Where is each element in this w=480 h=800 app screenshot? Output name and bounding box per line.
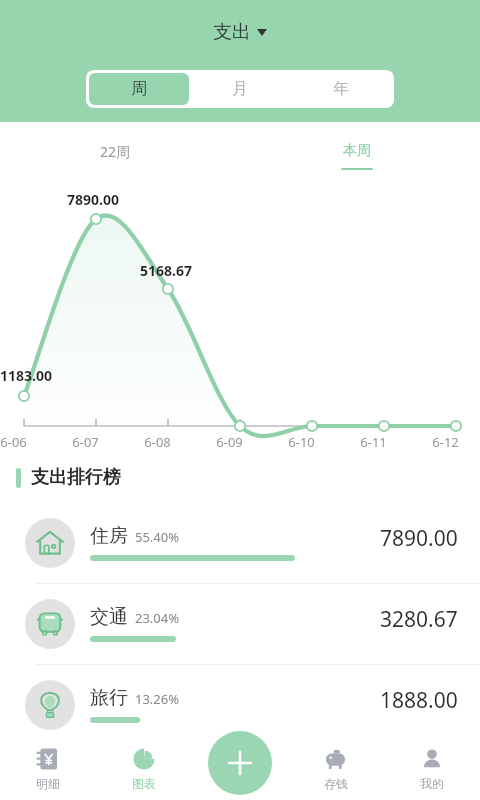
staticText: 6-09: [216, 433, 243, 451]
staticText: 住房: [90, 524, 128, 548]
staticText: 6-06: [0, 433, 27, 451]
staticText: 明细: [36, 776, 60, 791]
staticText: 本周: [343, 142, 371, 160]
button[interactable]: 明细: [0, 738, 96, 800]
button[interactable]: 旅行: [0, 665, 480, 745]
staticText: 13.26%: [135, 690, 180, 708]
staticText: 交通: [90, 605, 128, 629]
button[interactable]: 支出: [213, 20, 267, 44]
staticText: 6-11: [360, 433, 387, 451]
button[interactable]: 22周: [100, 142, 131, 161]
button[interactable]: Add record: [208, 731, 272, 795]
button[interactable]: 图表: [96, 738, 192, 800]
button[interactable]: 交通: [0, 584, 480, 664]
staticText: 1183.00: [0, 366, 52, 385]
staticText: 月: [232, 79, 248, 99]
button[interactable]: 月: [189, 73, 290, 105]
staticText: 55.40%: [135, 528, 180, 546]
staticText: 1888.00: [380, 686, 458, 715]
button[interactable]: 周: [89, 73, 189, 105]
button[interactable]: 我的: [384, 738, 480, 800]
staticText: 3280.67: [380, 605, 458, 634]
staticText: 存钱: [324, 776, 348, 791]
staticText: 图表: [132, 776, 156, 791]
button[interactable]: 存钱: [288, 738, 384, 800]
staticText: 7890.00: [380, 524, 458, 553]
button[interactable]: 年: [290, 73, 391, 105]
button[interactable]: 本周: [341, 142, 373, 170]
staticText: 支出: [213, 20, 251, 44]
staticText: 23.04%: [135, 609, 180, 627]
button[interactable]: 住房: [0, 503, 480, 583]
staticText: 7890.00: [67, 190, 119, 209]
staticText: 支出排行榜: [31, 466, 121, 489]
staticText: 6-07: [72, 433, 99, 451]
staticText: 6-12: [432, 433, 459, 451]
staticText: 年: [333, 79, 349, 99]
staticText: 6-08: [144, 433, 171, 451]
staticText: 我的: [420, 776, 444, 791]
staticText: 周: [131, 79, 147, 99]
staticText: 5168.67: [140, 261, 192, 280]
staticText: 6-10: [288, 433, 315, 451]
staticText: 旅行: [90, 686, 128, 710]
